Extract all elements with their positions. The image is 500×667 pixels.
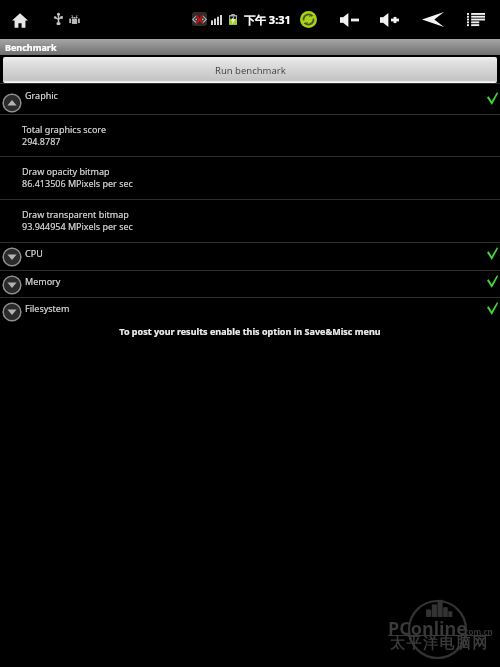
staticText: Run benchmark bbox=[215, 64, 286, 77]
button[interactable]: Filesystem bbox=[0, 298, 500, 325]
staticText: 太平洋电脑网 bbox=[389, 634, 488, 653]
button[interactable]: Draw transparent bitmap bbox=[0, 200, 500, 241]
staticText: 86.413506 MPixels per sec bbox=[22, 177, 133, 189]
button[interactable]: CPU bbox=[0, 243, 500, 270]
staticText: Memory bbox=[25, 275, 61, 287]
staticText: Total graphics score bbox=[22, 123, 106, 135]
button[interactable]: Volume up bbox=[374, 6, 404, 33]
staticText: Draw opacity bitmap bbox=[22, 165, 110, 177]
staticText: 294.8787 bbox=[22, 135, 61, 147]
button[interactable]: Run benchmark bbox=[3, 57, 497, 83]
button[interactable]: Graphic bbox=[0, 84, 500, 114]
staticText: To post your results enable this option … bbox=[0, 325, 500, 337]
staticText: Benchmark bbox=[5, 41, 57, 53]
staticText: CPU bbox=[25, 247, 43, 259]
button[interactable]: Back bbox=[416, 6, 448, 33]
staticText: 下午 3:31 bbox=[244, 12, 291, 27]
staticText: Filesystem bbox=[25, 302, 70, 314]
staticText: Draw transparent bitmap bbox=[22, 208, 129, 220]
staticText: Graphic bbox=[25, 89, 58, 101]
button[interactable]: Total graphics score bbox=[0, 115, 500, 156]
button[interactable]: Memory bbox=[0, 271, 500, 297]
button[interactable]: Home bbox=[6, 6, 34, 34]
button[interactable]: Volume down bbox=[334, 6, 364, 33]
button[interactable]: Draw opacity bitmap bbox=[0, 157, 500, 198]
button[interactable]: Recent apps bbox=[461, 6, 489, 33]
staticText: PConline bbox=[388, 616, 467, 641]
staticText: 93.944954 MPixels per sec bbox=[22, 220, 133, 232]
staticText: .com.cn bbox=[462, 626, 493, 637]
